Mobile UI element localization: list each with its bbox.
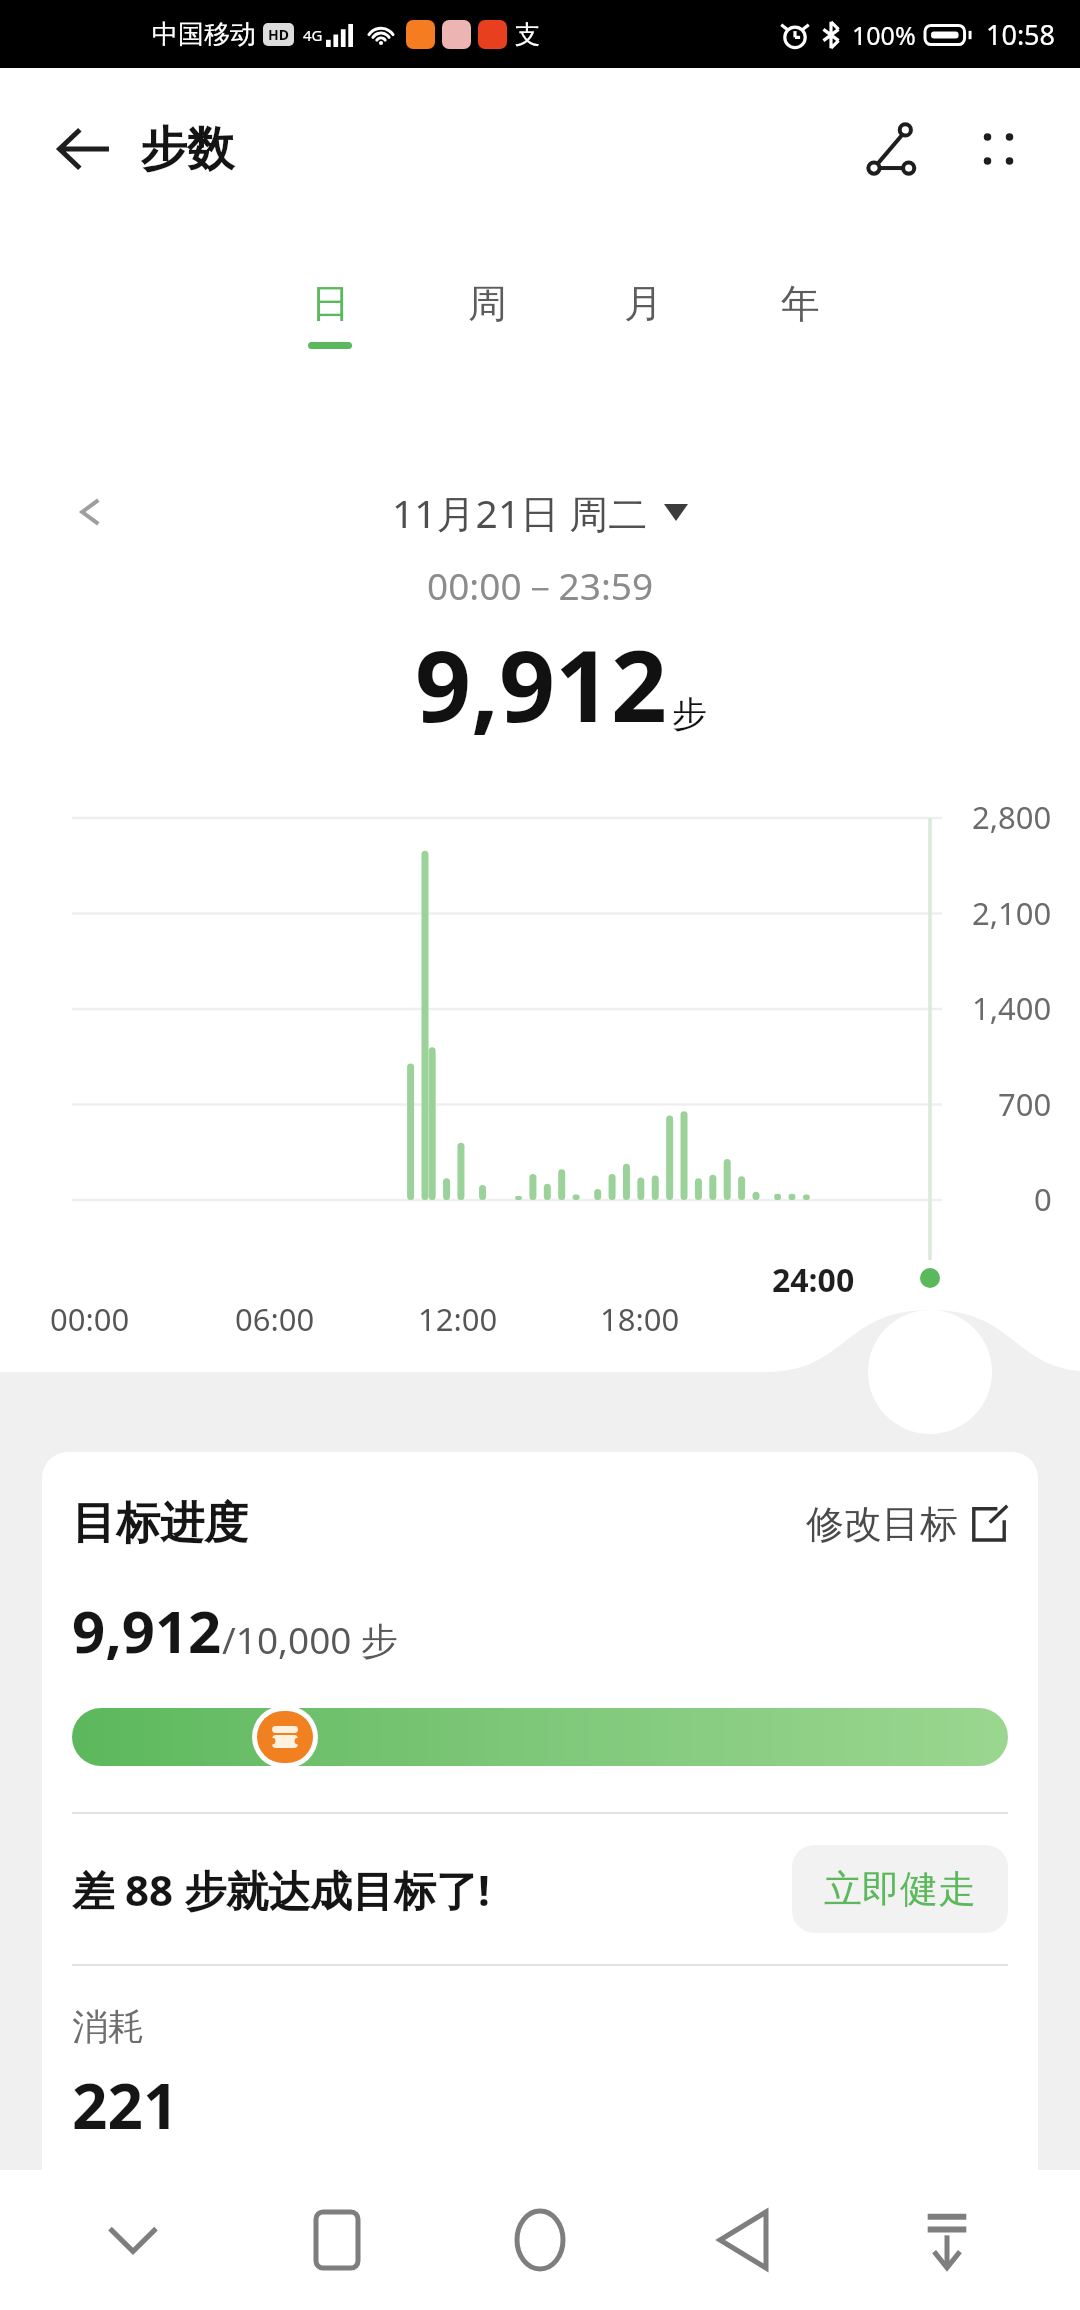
- staticText: 00:00: [50, 1298, 130, 1340]
- button[interactable]: 11月21日 周二: [392, 486, 688, 539]
- staticText: 步数: [140, 120, 234, 179]
- button[interactable]: 年: [758, 240, 842, 388]
- staticText: 4G: [303, 25, 323, 45]
- button[interactable]: 周: [445, 240, 529, 388]
- staticText: 06:00: [235, 1298, 315, 1340]
- button[interactable]: Hide keyboard: [63, 2170, 203, 2310]
- staticText: HD: [268, 25, 289, 44]
- staticText: 目标进度: [72, 1496, 248, 1551]
- button[interactable]: Back: [42, 107, 126, 191]
- button[interactable]: 修改目标: [806, 1500, 1008, 1548]
- staticText: 9,912: [415, 617, 668, 750]
- button[interactable]: Recents: [267, 2170, 407, 2310]
- staticText: 12:00: [418, 1298, 498, 1340]
- button[interactable]: Home: [470, 2170, 610, 2310]
- staticText: 日: [311, 279, 350, 328]
- staticText: 步: [672, 692, 707, 736]
- staticText: 100%: [852, 18, 916, 52]
- staticText: 立即健走: [824, 1865, 976, 1913]
- button[interactable]: Share: [850, 106, 936, 192]
- staticText: 2,100: [972, 892, 1052, 934]
- staticText: 年: [781, 279, 820, 328]
- staticText: 周: [468, 279, 507, 328]
- staticText: 消耗: [72, 2004, 144, 2049]
- staticText: 2,800: [972, 796, 1052, 838]
- staticText: 中国移动: [152, 18, 256, 51]
- staticText: 支: [515, 19, 540, 50]
- button[interactable]: 立即健走: [792, 1845, 1008, 1933]
- staticText: 221: [72, 2063, 179, 2147]
- staticText: 00:00－23:59: [427, 560, 654, 611]
- staticText: 700: [998, 1083, 1052, 1125]
- button[interactable]: Scroll handle: [868, 1310, 992, 1434]
- staticText: 1,400: [972, 987, 1052, 1029]
- staticText: 24:00: [772, 1258, 855, 1302]
- staticText: 11月21日 周二: [392, 486, 648, 539]
- staticText: 月: [624, 279, 663, 328]
- staticText: 修改目标: [806, 1500, 958, 1548]
- staticText: /10,000 步: [222, 1614, 399, 1665]
- button[interactable]: Split screen: [877, 2170, 1017, 2310]
- button[interactable]: Previous day: [58, 480, 122, 544]
- staticText: 差 88 步就达成目标了!: [72, 1861, 490, 1918]
- staticText: 18:00: [600, 1298, 680, 1340]
- button[interactable]: More options: [962, 113, 1034, 185]
- staticText: 9,912: [72, 1591, 222, 1670]
- button[interactable]: Back: [673, 2170, 813, 2310]
- staticText: 0: [1034, 1178, 1052, 1220]
- button[interactable]: 月: [601, 240, 685, 388]
- staticText: 10:58: [986, 16, 1056, 53]
- button[interactable]: 日: [288, 240, 372, 388]
